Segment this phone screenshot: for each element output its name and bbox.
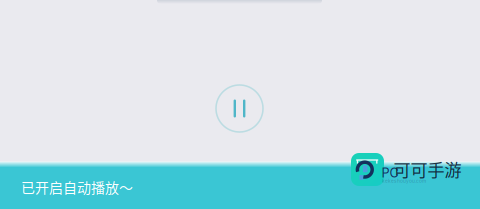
staticText: 可可手游	[393, 157, 461, 181]
staticText: PC	[381, 165, 398, 180]
staticText: 已开启自动播放～	[21, 177, 133, 197]
staticText: kekeshouyou.com	[382, 178, 426, 184]
button[interactable]: Pause	[216, 85, 263, 132]
